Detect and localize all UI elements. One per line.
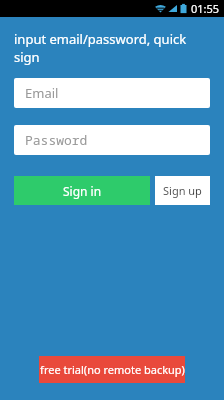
button[interactable]: Sign in [14, 176, 150, 205]
staticText: 01:55 [191, 1, 220, 16]
staticText: free trial(no remote backup) [40, 362, 185, 377]
staticText: Sign up [163, 183, 202, 198]
button[interactable]: free trial(no remote backup) [39, 356, 185, 383]
staticText: Sign in [63, 183, 102, 199]
staticText: Password [25, 131, 88, 149]
button[interactable]: Email [14, 78, 210, 108]
staticText: input email/password, quick sign [14, 30, 214, 66]
staticText: Email [25, 84, 59, 102]
button[interactable]: Password [14, 125, 210, 155]
button[interactable]: Sign up [155, 176, 210, 205]
